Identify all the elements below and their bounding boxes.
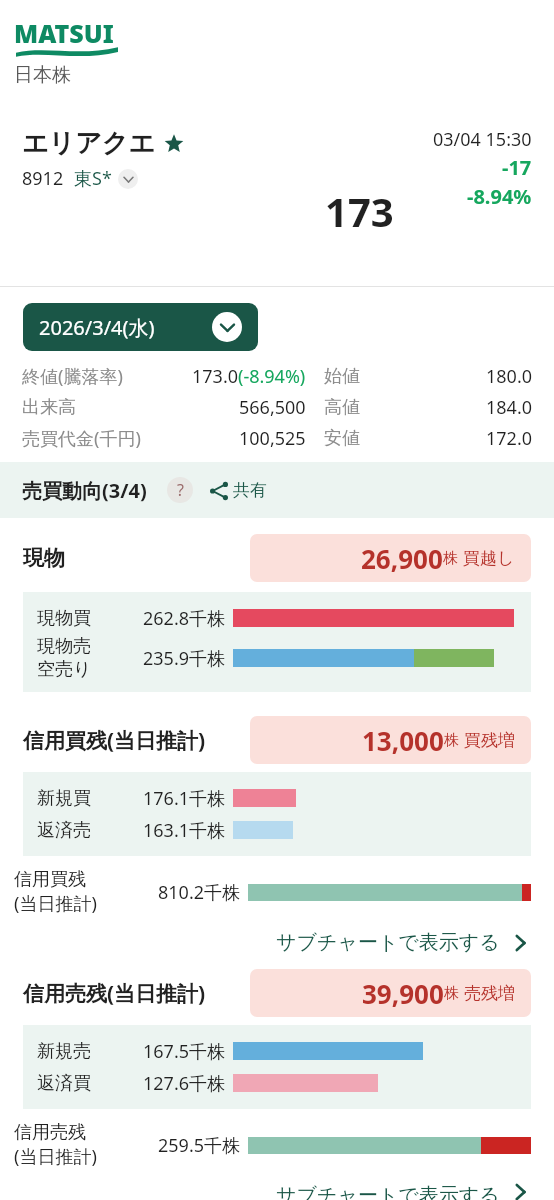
staticText: ? (177, 479, 184, 501)
staticText: 167.5千株 (117, 1039, 225, 1064)
staticText: 235.9千株 (117, 646, 225, 671)
button[interactable]: 共有 (209, 480, 267, 501)
staticText: 株 (443, 549, 458, 568)
staticText: 東S* (74, 166, 112, 191)
other: Favorite (164, 134, 184, 154)
staticText: 100,525 (239, 426, 306, 451)
staticText: 高値 (324, 396, 384, 419)
staticText: 信用売残 (14, 1121, 86, 1144)
staticText: 39,900 (362, 976, 444, 1011)
staticText: 出来高 (22, 396, 154, 419)
staticText: サブチャートで表示する (276, 1183, 500, 1200)
staticText: 184.0 (384, 395, 532, 420)
staticText: 空売り (37, 658, 92, 681)
staticText: 173 (325, 184, 394, 238)
staticText: 買越し (463, 548, 515, 569)
staticText: (当日推計) (14, 1144, 97, 1169)
staticText: MATSUI (14, 16, 114, 50)
staticText: 163.1千株 (117, 818, 225, 843)
staticText: 終値(騰落率) (22, 364, 154, 389)
staticText: 新規売 (37, 1040, 91, 1063)
staticText: 03/04 15:30 (433, 127, 532, 152)
staticText: 信用買残(当日推計) (23, 726, 206, 755)
staticText: 共有 (233, 480, 267, 501)
staticText: 現物 (23, 545, 65, 571)
staticText: 172.0 (384, 426, 532, 451)
staticText: 買残増 (464, 730, 515, 751)
staticText: -8.94% (467, 183, 532, 210)
button[interactable]: サブチャートで表示する (0, 1183, 528, 1200)
staticText: 株 (444, 731, 459, 750)
button[interactable]: Market menu (118, 169, 138, 189)
staticText: 13,000 (362, 723, 444, 758)
staticText: 8912 (22, 166, 64, 191)
staticText: 現物売 (37, 635, 91, 658)
staticText: 売残増 (464, 983, 515, 1004)
staticText: 株 (444, 984, 459, 1003)
staticText: 新規買 (37, 787, 91, 810)
staticText: 2026/3/4(水) (39, 314, 155, 341)
staticText: 180.0 (384, 364, 532, 389)
staticText: 信用買残 (14, 868, 86, 891)
staticText: 566,500 (239, 395, 306, 420)
button[interactable]: サブチャートで表示する (0, 930, 528, 955)
button[interactable]: 26,900 (250, 534, 531, 582)
staticText: 173.0(-8.94%) (192, 364, 306, 389)
button[interactable]: 13,000 (250, 716, 531, 764)
staticText: 810.2千株 (130, 880, 240, 905)
staticText: エリアクエ (22, 127, 156, 160)
button[interactable]: Help (167, 477, 193, 503)
staticText: 売買代金(千円) (22, 426, 154, 451)
staticText: サブチャートで表示する (276, 930, 500, 955)
staticText: 176.1千株 (117, 786, 225, 811)
staticText: 26,900 (361, 541, 443, 576)
staticText: 返済買 (37, 1072, 91, 1095)
staticText: (当日推計) (14, 891, 97, 916)
button[interactable]: 2026/3/4(水) (23, 303, 258, 351)
staticText: -17 (502, 154, 532, 181)
staticText: 現物買 (37, 607, 91, 630)
staticText: 売買動向(3/4) (22, 477, 147, 504)
staticText: 始値 (324, 365, 384, 388)
staticText: 安値 (324, 427, 384, 450)
staticText: 262.8千株 (117, 606, 225, 631)
staticText: 日本株 (14, 63, 71, 87)
staticText: 返済売 (37, 819, 91, 842)
staticText: 信用売残(当日推計) (23, 979, 206, 1008)
staticText: 259.5千株 (130, 1133, 240, 1158)
staticText: 127.6千株 (117, 1071, 225, 1096)
button[interactable]: 39,900 (250, 969, 531, 1017)
